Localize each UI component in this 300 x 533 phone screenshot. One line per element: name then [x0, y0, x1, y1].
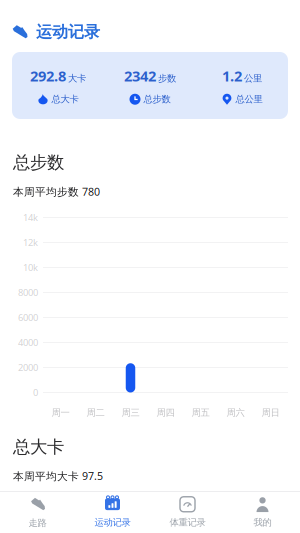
staticText: 走路	[28, 517, 46, 529]
staticText: 体重记录	[169, 517, 205, 528]
button[interactable]: 体重记录	[150, 492, 225, 533]
staticText: 4000	[18, 336, 38, 349]
staticText: 总步数	[143, 93, 170, 105]
staticText: 我的	[253, 517, 271, 528]
staticText: 总大卡	[51, 93, 78, 105]
staticText: 总步数	[13, 152, 64, 173]
button[interactable]: 我的	[225, 492, 300, 533]
staticText: 周三	[121, 407, 139, 418]
staticText: 总大卡	[13, 436, 64, 458]
staticText: 本周平均大卡 97.5	[13, 469, 103, 483]
staticText: 2342	[124, 66, 156, 85]
staticText: 8000	[18, 286, 38, 299]
staticText: 总公里	[235, 93, 262, 105]
button[interactable]: 运动记录	[75, 492, 150, 533]
staticText: 14k	[23, 211, 38, 224]
button[interactable]: 走路	[0, 492, 75, 533]
staticText: 公里	[244, 73, 262, 84]
staticText: 周四	[156, 407, 174, 418]
staticText: 大卡	[68, 73, 86, 84]
staticText: 周日	[261, 407, 279, 418]
staticText: 本周平均步数 780	[13, 184, 100, 199]
staticText: 10k	[23, 261, 38, 274]
staticText: 周五	[191, 407, 209, 418]
staticText: 运动记录	[94, 517, 130, 528]
staticText: 周一	[51, 407, 69, 418]
staticText: 0	[33, 386, 38, 399]
staticText: 12k	[23, 236, 38, 249]
staticText: 292.8	[30, 66, 66, 85]
staticText: 周二	[86, 407, 104, 418]
staticText: 6000	[18, 311, 38, 324]
staticText: 周六	[226, 407, 244, 418]
staticText: 1.2	[222, 66, 242, 85]
staticText: 运动记录	[36, 22, 100, 42]
staticText: 步数	[158, 73, 176, 84]
staticText: 2000	[18, 361, 38, 374]
